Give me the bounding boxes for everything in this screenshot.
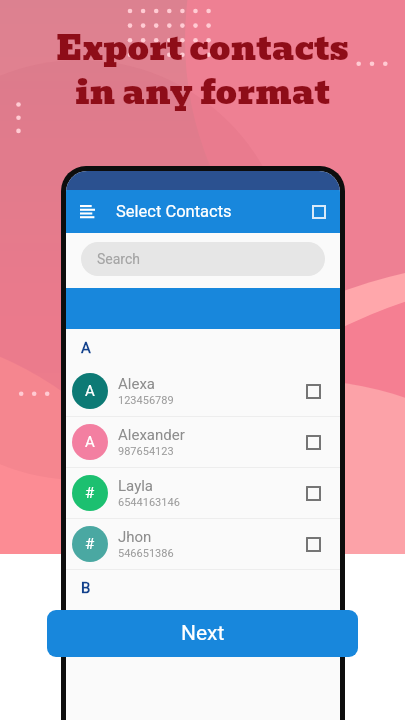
staticText: B — [81, 579, 91, 597]
staticText: A — [85, 433, 95, 451]
staticText: 6544163146 — [118, 496, 180, 509]
button[interactable]: Select all — [302, 200, 326, 224]
staticText: 123456789 — [118, 394, 174, 407]
staticText: Export contacts in any format — [56, 21, 349, 119]
button[interactable]: A — [66, 417, 340, 468]
staticText: Layla — [118, 477, 154, 495]
staticText: A — [85, 382, 95, 400]
staticText: Search — [97, 251, 141, 267]
staticText: 987654123 — [118, 445, 174, 458]
button[interactable]: # — [66, 468, 340, 519]
staticText: # — [85, 484, 95, 502]
staticText: 546651386 — [118, 547, 174, 560]
staticText: Jhon — [118, 528, 152, 546]
button[interactable]: Menu — [80, 200, 104, 224]
button[interactable]: Next — [47, 610, 358, 657]
staticText: Next — [181, 621, 225, 646]
button[interactable]: # — [66, 519, 340, 570]
staticText: Alexander — [118, 426, 185, 444]
button[interactable]: Search — [81, 242, 325, 276]
button[interactable]: A — [66, 366, 340, 417]
staticText: Alexa — [118, 375, 155, 393]
staticText: Select Contacts — [116, 202, 232, 221]
staticText: # — [85, 535, 95, 553]
staticText: A — [81, 339, 91, 357]
